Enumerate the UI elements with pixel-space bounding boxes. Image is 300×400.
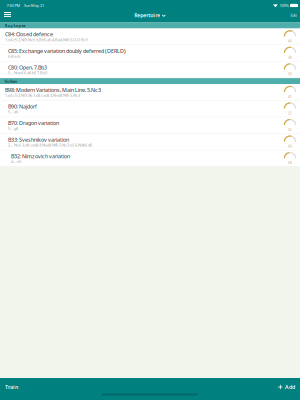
staticText: B32: Nimzovich variation [11, 153, 70, 160]
staticText: 6.Bxc6 [8, 53, 20, 59]
staticText: Edit [290, 13, 296, 18]
button[interactable]: B33: Sveshnikov variation [0, 134, 300, 150]
staticText: 44 [288, 39, 292, 43]
button[interactable]: C85: Exchange variation doubly deferred … [0, 45, 300, 62]
staticText: C80: Open, 7.Bb3 [8, 64, 47, 71]
staticText: B70: Dragon variation [8, 119, 59, 127]
staticText: 5... a6 [8, 109, 18, 114]
staticText: 30 [288, 72, 292, 76]
button[interactable]: C84: Closed defence [0, 28, 300, 45]
staticText: B33: Sveshnikov variation [8, 136, 69, 143]
staticText: 1.e4 c5 2.Nf3 d6 3.d4 cxd4 4.Nxd4 Nf6 5.… [5, 93, 80, 98]
staticText: 5... g6 [8, 126, 18, 131]
staticText: Train [5, 383, 18, 390]
button[interactable]: Repertoire [134, 9, 166, 24]
staticText: 5... Nxe4 6.d4 b5 7.Bb3 [8, 70, 47, 75]
staticText: 35 [288, 112, 292, 115]
staticText: Sicilian [4, 78, 17, 84]
button[interactable]: Edit [290, 9, 300, 24]
staticText: 41 [288, 95, 292, 99]
staticText: C85: Exchange variation doubly deferred … [8, 47, 126, 54]
staticText: C84: Closed defence [5, 31, 53, 38]
button[interactable]: B70: Dragon variation [0, 117, 300, 134]
staticText: 40 [288, 145, 292, 148]
staticText: 100% [279, 3, 288, 8]
staticText: 7:03 PM [6, 3, 20, 8]
button[interactable]: B98: Modern Variations, Main Line, 5.Nc3 [0, 84, 300, 101]
button[interactable]: Add [278, 377, 300, 400]
staticText: 38 [288, 56, 292, 59]
staticText: Repertoire [134, 12, 160, 19]
button[interactable]: B32: Nimzovich variation [0, 150, 300, 167]
staticText: 2... Nc6 3.d4 cxd4 4.Nxd4 Nf6 5.Nc3 e5 6… [8, 142, 92, 147]
button[interactable]: C80: Open, 7.Bb3 [0, 62, 300, 78]
button[interactable]: Menu [0, 11, 18, 22]
staticText: 1.e4 e5 2.Nf3 Nc6 3.Bb5 a6 4.Ba4 Nf6 5.O… [5, 37, 88, 42]
staticText: 28 [288, 161, 292, 165]
staticText: 32 [288, 128, 292, 132]
staticText: Add [285, 383, 295, 390]
button[interactable]: B90: Najdorf [0, 101, 300, 117]
staticText: Sun May 21 [24, 3, 44, 8]
button[interactable]: Train [0, 377, 18, 400]
staticText: 4... e5 [11, 159, 21, 164]
staticText: B98: Modern Variations, Main Line, 5.Nc3 [5, 86, 101, 93]
staticText: B90: Najdorf [8, 103, 37, 110]
staticText: Ruy Lopez [4, 23, 25, 28]
